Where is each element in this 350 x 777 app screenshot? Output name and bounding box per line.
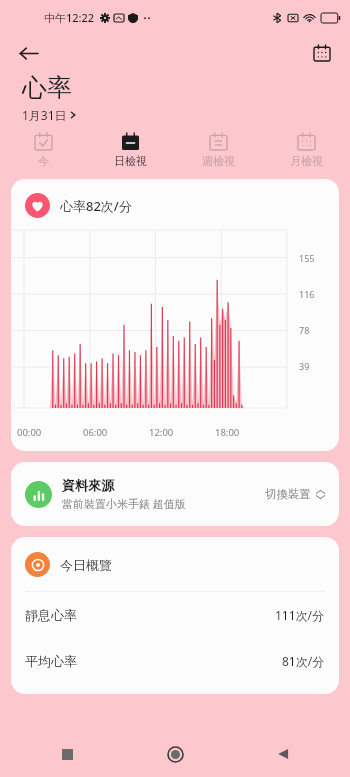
staticText: 111次/分	[275, 607, 325, 623]
staticText: 平均心率	[25, 653, 77, 669]
button[interactable]: 日檢視	[87, 130, 174, 171]
staticText: 當前裝置小米手錶 超值版	[62, 496, 186, 511]
staticText: 資料來源	[62, 477, 114, 493]
staticText: 00:00	[17, 426, 42, 439]
staticText: 今	[38, 154, 49, 168]
button[interactable]: 靜息心率	[11, 592, 339, 638]
staticText: 中午12:22	[44, 10, 95, 25]
button[interactable]: 週檢視	[174, 130, 262, 171]
staticText: 116	[299, 288, 315, 300]
button[interactable]: Back	[266, 737, 300, 771]
staticText: 18:00	[215, 426, 240, 439]
staticText: 心率	[22, 72, 72, 103]
button[interactable]: Calendar	[306, 37, 338, 69]
button[interactable]: 月檢視	[262, 130, 350, 171]
staticText: 心率82次/分	[60, 197, 132, 215]
staticText: 週檢視	[202, 154, 235, 168]
staticText: 今日概覽	[60, 557, 112, 573]
staticText: 切換裝置	[265, 487, 311, 501]
button[interactable]: Home	[158, 737, 192, 771]
staticText: 日檢視	[114, 154, 147, 168]
staticText: 1月31日	[22, 107, 67, 123]
button[interactable]: 今	[0, 130, 87, 171]
staticText: 月檢視	[290, 154, 323, 168]
button[interactable]: Back	[12, 37, 44, 69]
staticText: 靜息心率	[25, 607, 77, 623]
staticText: 12:00	[149, 426, 174, 439]
staticText: 155	[299, 252, 315, 264]
staticText: 06:00	[83, 426, 108, 439]
button[interactable]: Recents	[50, 737, 84, 771]
button[interactable]: 平均心率	[11, 638, 339, 684]
staticText: 39	[299, 360, 310, 372]
staticText: 81次/分	[282, 653, 325, 669]
staticText: 78	[299, 324, 310, 336]
button[interactable]: 1月31日	[22, 106, 83, 124]
button[interactable]: 資料來源	[0, 462, 350, 526]
